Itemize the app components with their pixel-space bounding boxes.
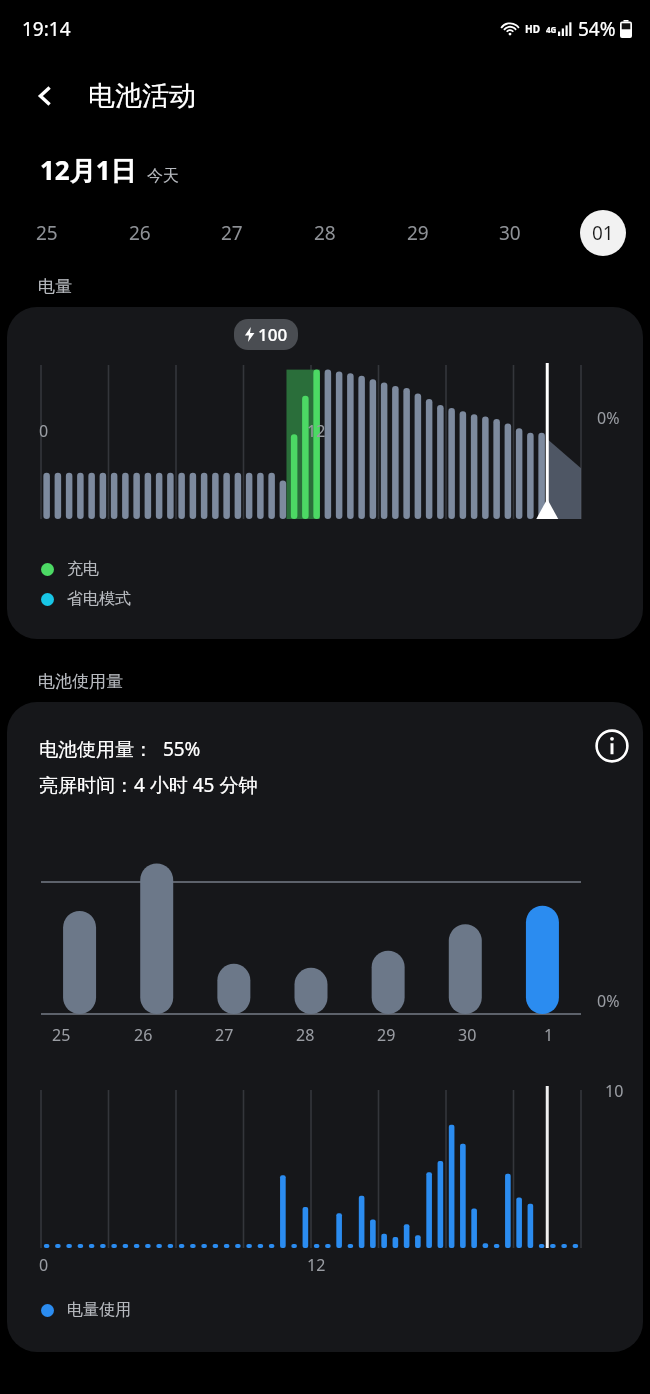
staticText: 30	[458, 1024, 477, 1046]
staticText: 29	[377, 1024, 396, 1046]
button[interactable]: 26	[111, 204, 169, 262]
staticText: 27	[215, 1024, 234, 1046]
staticText: 25	[52, 1024, 71, 1046]
staticText: HD	[525, 22, 540, 36]
staticText: 电池活动	[88, 79, 196, 113]
staticText: 电池使用量	[38, 671, 123, 692]
button[interactable]: 30	[481, 204, 539, 262]
staticText: 26	[134, 1024, 153, 1046]
button[interactable]: 25	[18, 204, 76, 262]
button[interactable]: 0	[7, 307, 643, 639]
staticText: 27	[221, 220, 243, 246]
staticText: 电量	[38, 276, 72, 297]
staticText: 0	[39, 420, 49, 442]
staticText: 充电	[67, 559, 99, 579]
staticText: 1	[544, 1024, 554, 1046]
button[interactable]: Info	[590, 724, 634, 768]
staticText: 12月1日	[40, 152, 137, 188]
staticText: 30	[499, 220, 521, 246]
staticText: 19:14	[22, 16, 71, 42]
staticText: 25	[36, 220, 58, 246]
staticText: 0	[39, 1254, 49, 1276]
staticText: 12	[307, 420, 326, 442]
staticText: 0%	[597, 407, 620, 429]
staticText: 01	[592, 220, 614, 246]
staticText: 26	[129, 220, 151, 246]
button[interactable]: 27	[203, 204, 261, 262]
button[interactable]: 01	[574, 204, 632, 262]
staticText: 电量使用	[67, 1300, 131, 1320]
staticText: 100	[258, 323, 288, 346]
staticText: 10	[605, 1080, 624, 1102]
staticText: 28	[296, 1024, 315, 1046]
button[interactable]: 29	[389, 204, 447, 262]
button[interactable]: Back	[24, 74, 68, 118]
button[interactable]: 28	[296, 204, 354, 262]
staticText: 12	[307, 1254, 326, 1276]
staticText: 今天	[147, 166, 179, 186]
staticText: 28	[314, 220, 336, 246]
staticText: 29	[407, 220, 429, 246]
staticText: 0%	[597, 990, 620, 1012]
staticText: 省电模式	[67, 589, 131, 609]
staticText: 4G	[546, 24, 557, 35]
staticText: 亮屏时间：4 小时 45 分钟	[39, 772, 258, 798]
staticText: 电池使用量： 55%	[39, 736, 201, 762]
staticText: 54%	[578, 16, 616, 42]
